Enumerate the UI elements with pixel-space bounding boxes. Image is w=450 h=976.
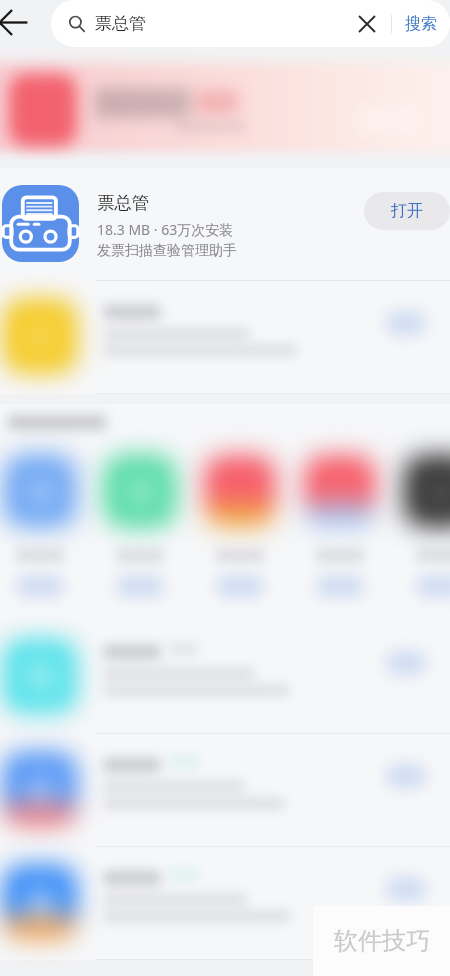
staticText: 票总管 (97, 192, 150, 214)
button[interactable] (204, 455, 276, 580)
staticText: 打开 (391, 201, 423, 221)
button[interactable] (0, 281, 450, 393)
staticText: 软件技巧 (334, 926, 430, 956)
button[interactable]: 票总管 (0, 168, 450, 281)
staticText: 18.3 MB · 63万次安装 (97, 220, 234, 239)
button[interactable] (104, 455, 176, 580)
staticText: 搜索 (405, 14, 437, 34)
staticText: 票总管 (95, 13, 146, 34)
button[interactable] (0, 734, 450, 846)
button[interactable] (0, 847, 450, 959)
button[interactable] (4, 455, 76, 580)
button[interactable]: 打开 (364, 192, 450, 230)
button[interactable] (304, 455, 376, 580)
staticText: 发票扫描查验管理助手 (97, 242, 237, 260)
button[interactable]: Clear search (347, 4, 387, 44)
button[interactable] (0, 621, 450, 733)
button[interactable] (404, 455, 450, 580)
button[interactable]: Back (0, 0, 35, 44)
button[interactable]: 搜索 (392, 0, 450, 47)
